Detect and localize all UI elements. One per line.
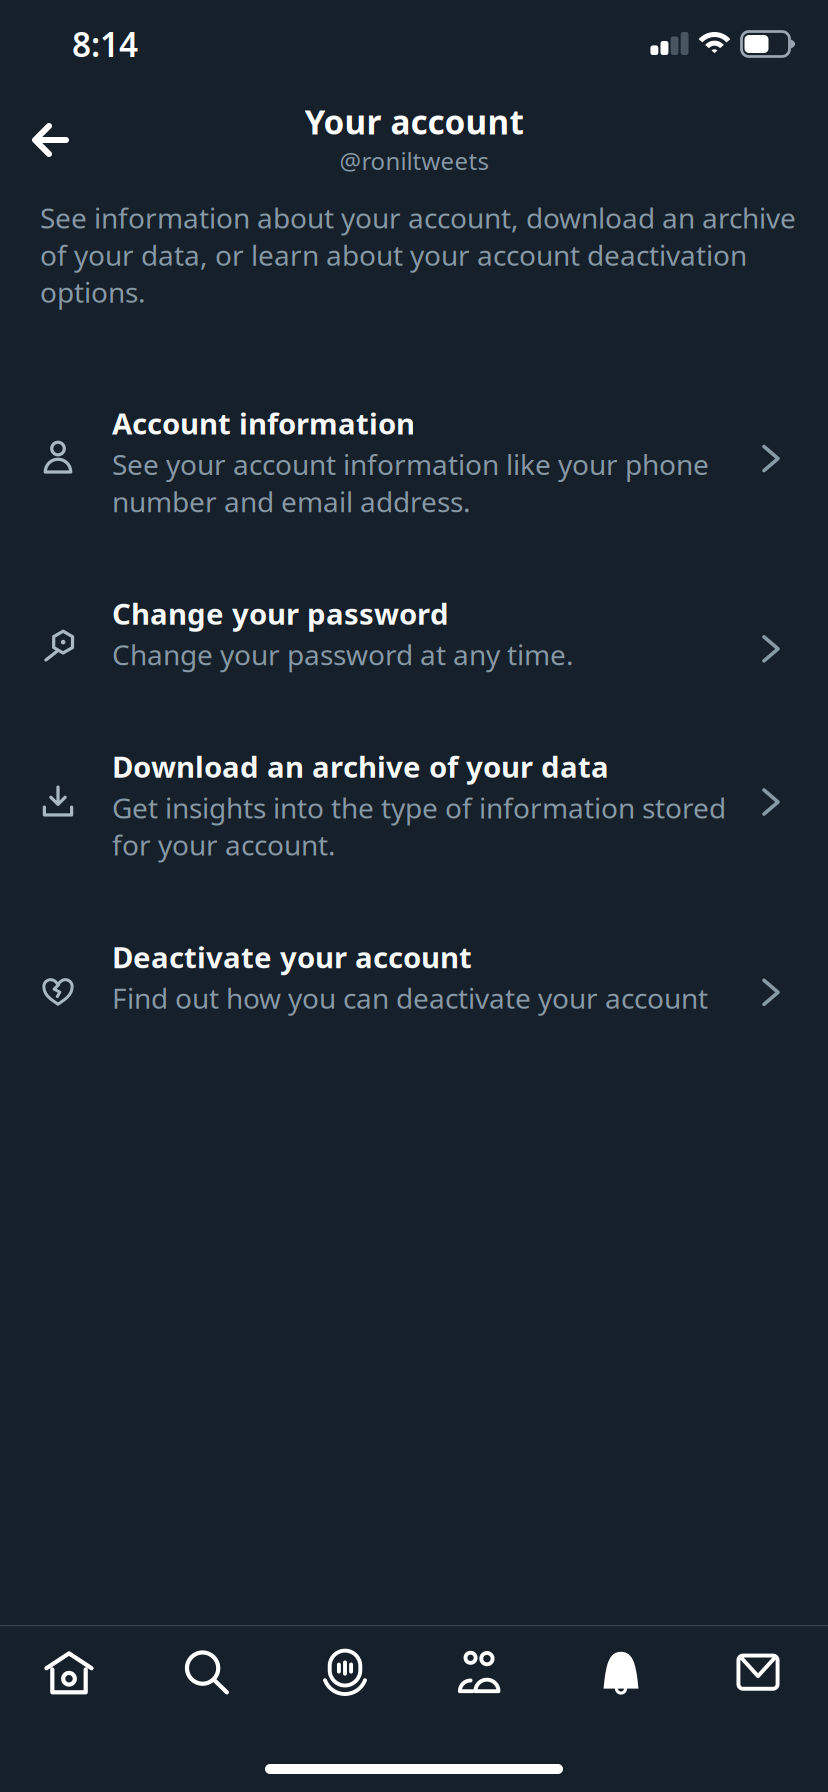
button[interactable]: Spaces xyxy=(276,1626,414,1718)
button[interactable]: Deactivate your account xyxy=(0,937,828,1016)
staticText: 8:14 xyxy=(72,22,138,66)
button[interactable]: Back xyxy=(0,94,82,168)
staticText: Get insights into the type of informatio… xyxy=(112,789,726,863)
button[interactable]: Home xyxy=(0,1626,138,1718)
button[interactable]: Communities xyxy=(414,1626,552,1718)
staticText: Change your password at any time. xyxy=(112,636,574,673)
staticText: Change your password xyxy=(112,594,449,633)
staticText: @roniltweets xyxy=(339,145,488,177)
button[interactable]: Messages xyxy=(690,1626,828,1718)
button[interactable]: Download an archive of your data xyxy=(0,747,828,863)
staticText: Your account xyxy=(304,99,523,144)
staticText: Find out how you can deactivate your acc… xyxy=(112,979,708,1016)
staticText: See information about your account, down… xyxy=(40,199,796,310)
button[interactable]: Notifications xyxy=(552,1626,690,1718)
button[interactable]: Account information xyxy=(0,403,828,520)
staticText: Download an archive of your data xyxy=(112,747,609,786)
staticText: Account information xyxy=(112,403,415,442)
button[interactable]: Search xyxy=(138,1626,276,1718)
staticText: See your account information like your p… xyxy=(112,445,709,520)
staticText: Deactivate your account xyxy=(112,937,472,976)
button[interactable]: Change your password xyxy=(0,594,828,673)
